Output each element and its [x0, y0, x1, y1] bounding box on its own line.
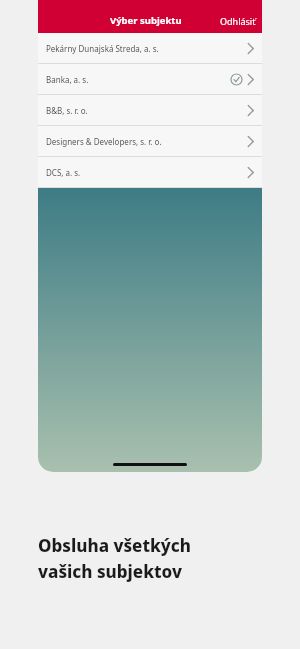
staticText: Výber subjektu	[110, 14, 182, 27]
staticText: DCS, a. s.	[46, 167, 246, 178]
staticText: Designers & Developers, s. r. o.	[46, 136, 246, 147]
button[interactable]: B&B, s. r. o.	[38, 95, 262, 125]
staticText: B&B, s. r. o.	[46, 105, 246, 116]
staticText: Odhlásiť	[220, 15, 256, 27]
staticText: vašich subjektov	[38, 560, 182, 583]
staticText: Obsluha všetkých	[38, 534, 192, 557]
other: Selected	[230, 73, 243, 86]
button[interactable]: Designers & Developers, s. r. o.	[38, 126, 262, 156]
button[interactable]: DCS, a. s.	[38, 157, 262, 187]
staticText: Pekárny Dunajská Streda, a. s.	[46, 43, 246, 54]
button[interactable]: Odhlásiť	[214, 12, 262, 30]
staticText: Banka, a. s.	[46, 74, 230, 85]
button[interactable]: Banka, a. s.	[38, 64, 262, 94]
button[interactable]: Pekárny Dunajská Streda, a. s.	[38, 33, 262, 63]
